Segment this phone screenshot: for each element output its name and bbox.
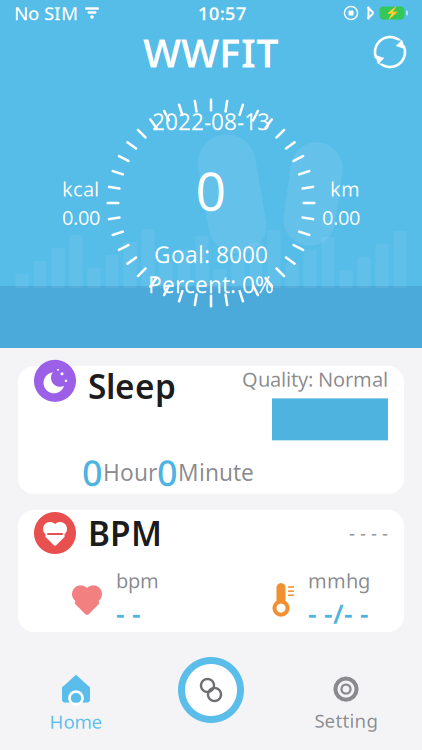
staticText: 0.00 [322,204,360,231]
staticText: 0 [195,154,226,225]
staticText: No SIM [14,1,78,25]
staticText: Quality: Normal [242,366,388,392]
staticText: Goal: 8000 [154,239,268,269]
staticText: Percent: 0% [148,269,274,300]
staticText: Sleep [88,364,176,408]
staticText: Minute [178,457,254,487]
staticText: Home [49,709,102,734]
staticText: kcal [62,175,99,202]
staticText: 0.00 [62,204,100,231]
staticText: km [330,175,360,202]
button[interactable]: Sleep [18,366,404,494]
staticText: Setting [314,708,377,733]
staticText: 2022-08-13 [152,106,270,136]
button[interactable]: Setting [276,668,416,740]
staticText: WWFIT [143,25,279,78]
staticText: - -/- - [308,596,369,631]
button[interactable]: Refresh [368,30,412,74]
staticText: bpm [116,567,159,594]
staticText: 0 [157,448,178,496]
button[interactable]: Connect device [172,651,250,729]
staticText: - - - - [349,521,388,545]
staticText: ⚡ [384,6,399,20]
staticText: 0 [82,448,103,496]
button[interactable]: BPM [18,510,404,632]
staticText: mmhg [308,567,370,594]
button[interactable]: Home [6,668,146,740]
staticText: Hour [103,457,157,487]
staticText: 10:57 [198,1,247,25]
staticText: - - [116,596,141,631]
staticText: BPM [88,511,162,555]
